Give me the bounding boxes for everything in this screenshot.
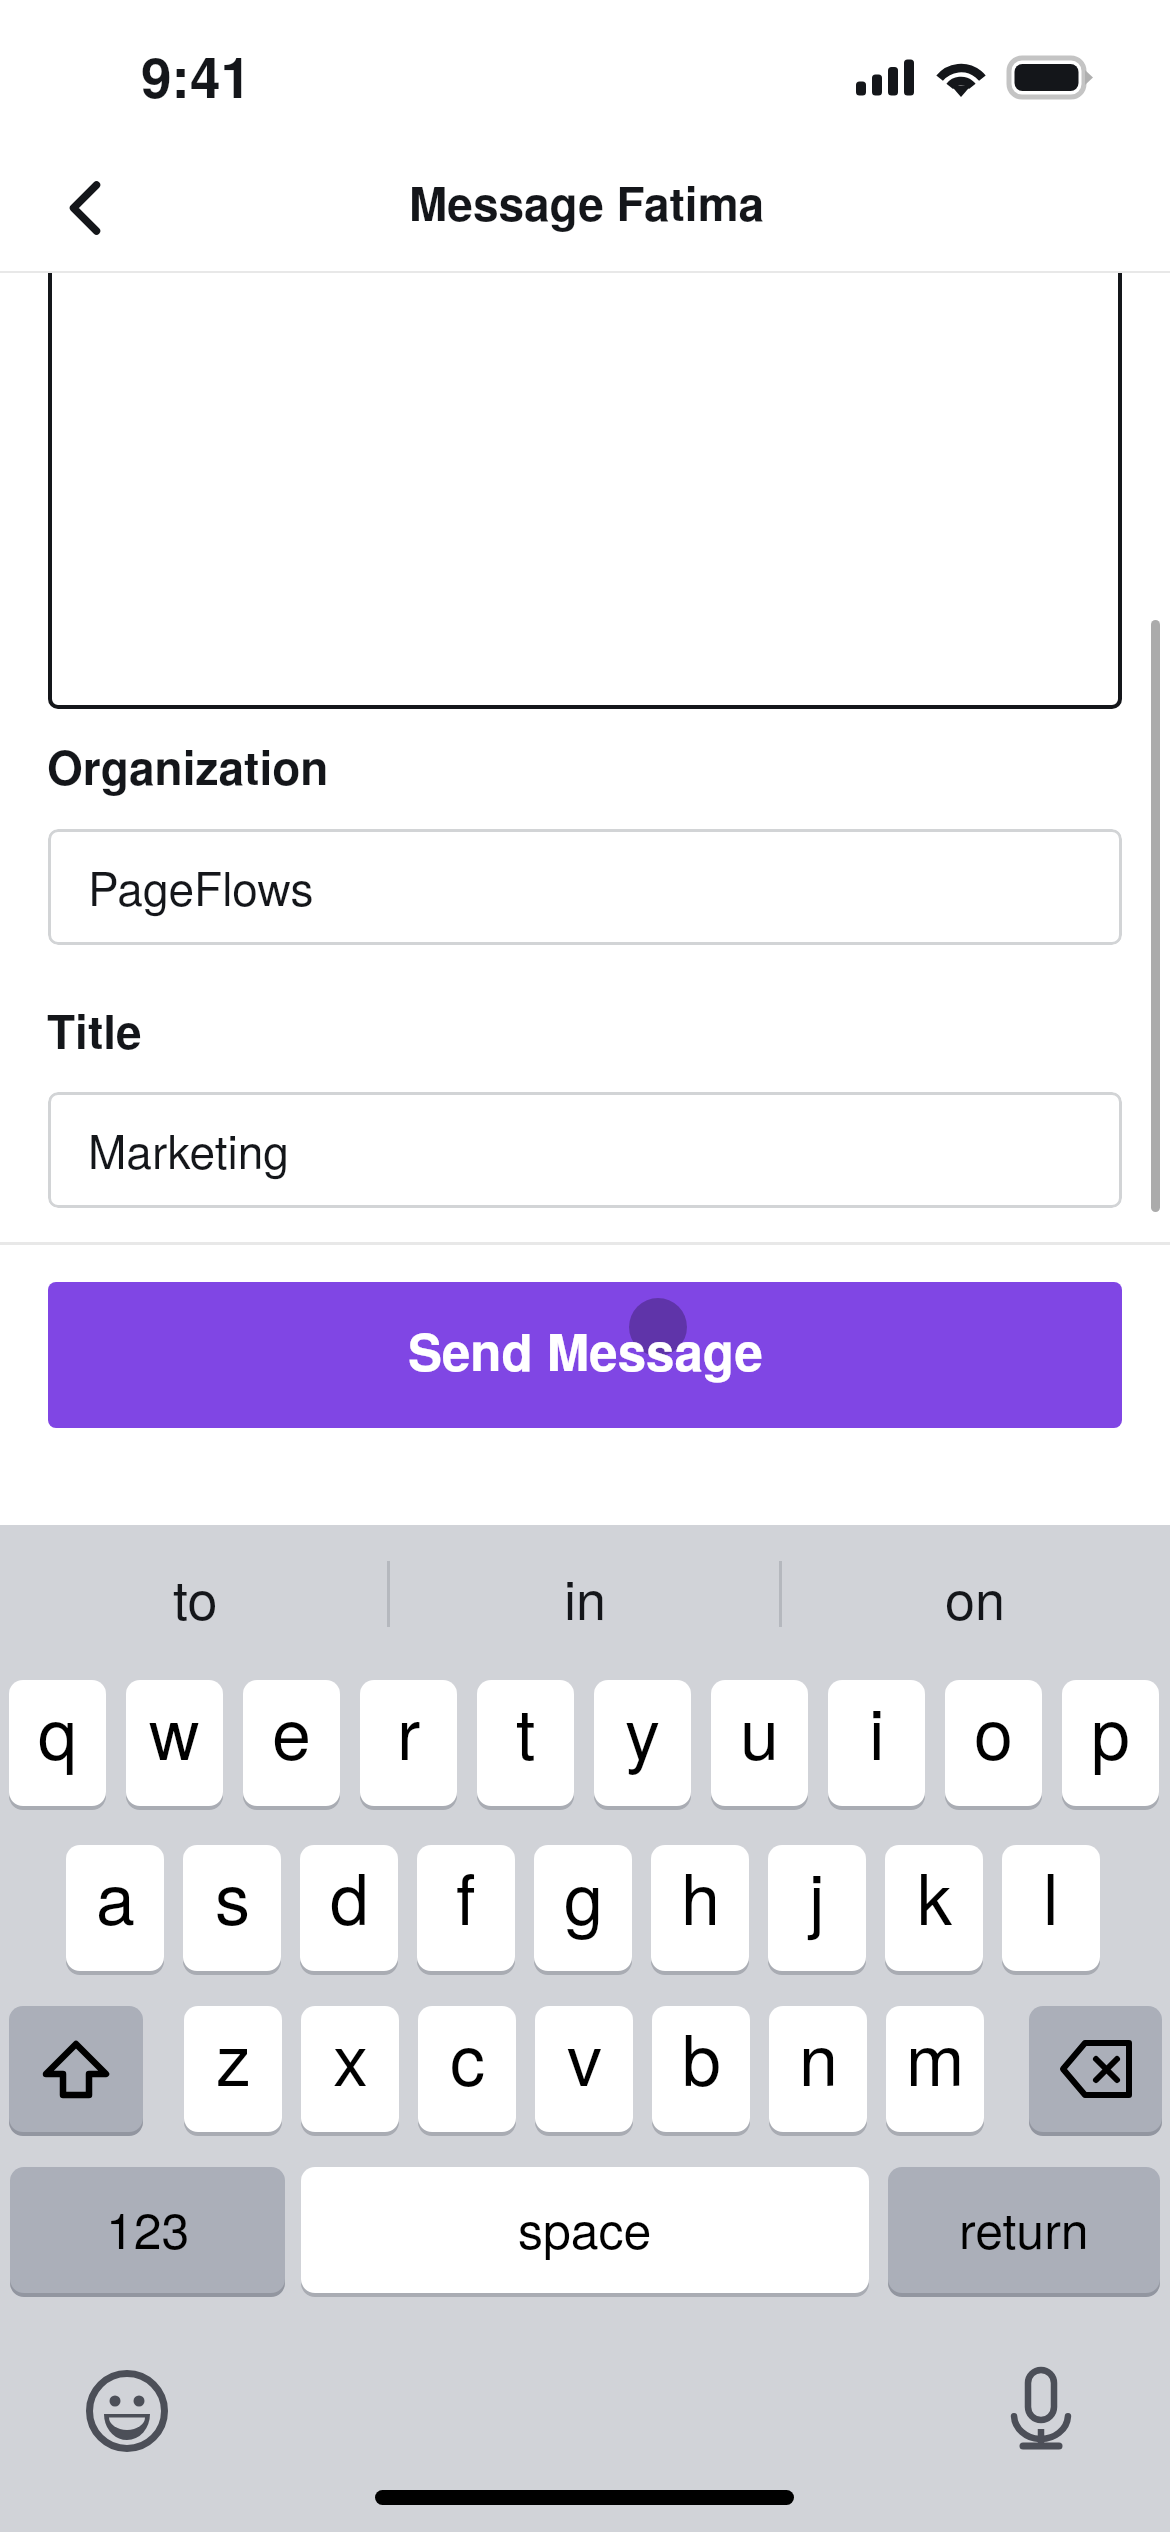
staticText: space — [518, 2192, 652, 2264]
staticText: c — [450, 2006, 485, 2106]
staticText: j — [809, 1845, 825, 1945]
staticText: f — [456, 1845, 476, 1945]
staticText: Title — [47, 997, 142, 1063]
staticText: b — [682, 2006, 721, 2106]
button[interactable]: j — [768, 1845, 866, 1971]
staticText: r — [397, 1680, 421, 1780]
button[interactable]: f — [417, 1845, 515, 1971]
staticText: return — [959, 2192, 1089, 2264]
staticText: q — [38, 1680, 77, 1780]
staticText: i — [869, 1680, 885, 1780]
button[interactable]: PageFlows — [48, 829, 1122, 945]
button[interactable]: d — [300, 1845, 398, 1971]
staticText: u — [740, 1680, 779, 1780]
button[interactable]: in — [390, 1525, 780, 1655]
button[interactable]: b — [652, 2006, 750, 2132]
button[interactable]: s — [183, 1845, 281, 1971]
button[interactable]: z — [184, 2006, 282, 2132]
staticText: g — [564, 1845, 603, 1945]
button[interactable]: r — [360, 1680, 457, 1806]
staticText: t — [516, 1680, 536, 1780]
button[interactable]: Marketing — [48, 1092, 1122, 1208]
button[interactable]: to — [0, 1525, 390, 1655]
button[interactable]: a — [66, 1845, 164, 1971]
staticText: in — [564, 1558, 607, 1635]
staticText: on — [945, 1558, 1006, 1635]
staticText: x — [333, 2006, 368, 2106]
button[interactable]: i — [828, 1680, 925, 1806]
button[interactable]: p — [1062, 1680, 1159, 1806]
staticText: p — [1091, 1680, 1130, 1780]
staticText: v — [567, 2006, 602, 2106]
staticText: m — [906, 2006, 965, 2106]
button[interactable]: u — [711, 1680, 808, 1806]
staticText: y — [625, 1680, 660, 1780]
button[interactable]: k — [885, 1845, 983, 1971]
button[interactable]: space — [301, 2167, 869, 2293]
staticText: n — [799, 2006, 838, 2106]
staticText: 123 — [106, 2192, 190, 2264]
button[interactable]: m — [886, 2006, 984, 2132]
button[interactable]: y — [594, 1680, 691, 1806]
staticText: s — [215, 1845, 250, 1945]
staticText: e — [272, 1680, 311, 1780]
button[interactable]: c — [418, 2006, 516, 2132]
staticText: k — [917, 1845, 952, 1945]
button[interactable]: q — [9, 1680, 106, 1806]
button[interactable]: 123 — [10, 2167, 285, 2293]
button[interactable]: Back — [28, 166, 120, 258]
button[interactable]: h — [651, 1845, 749, 1971]
button[interactable]: n — [769, 2006, 867, 2132]
button[interactable]: Shift — [9, 2006, 143, 2132]
button[interactable]: o — [945, 1680, 1042, 1806]
staticText: h — [681, 1845, 720, 1945]
staticText: Organization — [47, 733, 329, 799]
staticText: PageFlows — [88, 853, 314, 919]
staticText: a — [96, 1845, 135, 1945]
staticText: Message Fatima — [409, 169, 765, 235]
button[interactable]: x — [301, 2006, 399, 2132]
staticText: Send Message — [408, 1314, 763, 1387]
button[interactable] — [48, 273, 1122, 709]
button[interactable]: Emoji keyboard — [83, 2367, 171, 2455]
button[interactable]: return — [888, 2167, 1160, 2293]
staticText: l — [1043, 1845, 1059, 1945]
button[interactable]: on — [780, 1525, 1170, 1655]
button[interactable]: g — [534, 1845, 632, 1971]
button[interactable]: Dictation — [1008, 2367, 1088, 2459]
staticText: Marketing — [88, 1116, 289, 1182]
button[interactable]: l — [1002, 1845, 1100, 1971]
button[interactable]: Backspace — [1029, 2006, 1162, 2132]
button[interactable]: e — [243, 1680, 340, 1806]
staticText: o — [974, 1680, 1013, 1780]
button[interactable]: Send Message — [48, 1282, 1122, 1428]
staticText: d — [330, 1845, 369, 1945]
staticText: z — [216, 2006, 251, 2106]
staticText: to — [173, 1558, 218, 1635]
button[interactable]: v — [535, 2006, 633, 2132]
button[interactable]: w — [126, 1680, 223, 1806]
staticText: 9:41 — [141, 36, 252, 115]
button[interactable]: t — [477, 1680, 574, 1806]
staticText: w — [149, 1680, 200, 1780]
